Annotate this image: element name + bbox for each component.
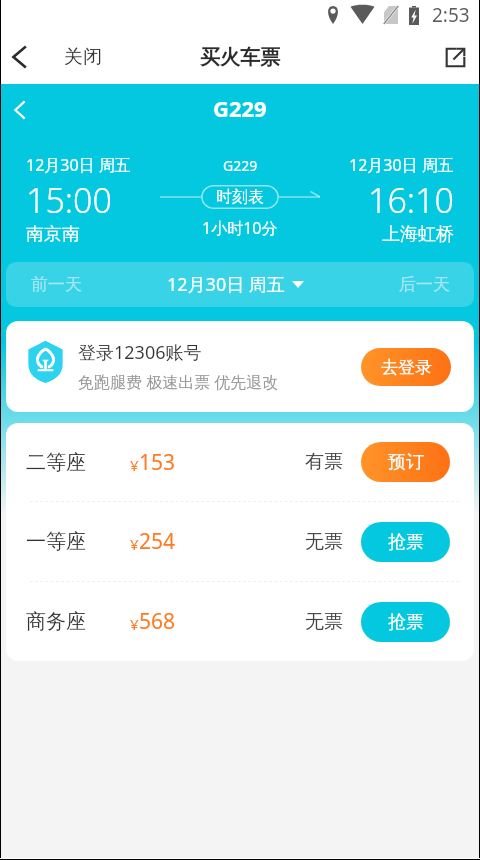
- staticText: ¥: [130, 455, 139, 475]
- staticText: 2:53: [432, 2, 470, 28]
- staticText: 无票: [305, 610, 343, 634]
- staticText: 登录12306账号: [78, 340, 202, 365]
- staticText: 有票: [305, 450, 343, 474]
- button[interactable]: 时刻表: [201, 185, 279, 209]
- button[interactable]: 预订: [361, 442, 450, 482]
- staticText: 568: [139, 607, 176, 636]
- staticText: 买火车票: [200, 45, 280, 70]
- button[interactable]: Back: [0, 84, 44, 136]
- staticText: 商务座: [26, 609, 86, 634]
- staticText: 12月30日 周五: [349, 154, 454, 176]
- button[interactable]: 抢票: [361, 522, 450, 562]
- staticText: 时刻表: [216, 187, 264, 207]
- button[interactable]: 登录12306账号: [6, 321, 474, 412]
- staticText: 预订: [388, 451, 424, 474]
- staticText: ¥: [130, 534, 139, 554]
- staticText: 15:00: [26, 177, 112, 223]
- button[interactable]: 前一天: [6, 262, 106, 307]
- staticText: 抢票: [388, 611, 424, 634]
- staticText: 二等座: [26, 450, 86, 475]
- button[interactable]: 关闭: [52, 30, 114, 84]
- staticText: 12月30日 周五: [167, 272, 285, 297]
- staticText: 免跑腿费 极速出票 优先退改: [78, 371, 279, 393]
- button[interactable]: 商务座: [6, 582, 474, 661]
- staticText: 关闭: [64, 45, 102, 69]
- button[interactable]: 12月30日 周五: [106, 262, 374, 307]
- staticText: 无票: [305, 530, 343, 554]
- button[interactable]: 一等座: [6, 502, 474, 581]
- staticText: 153: [139, 448, 176, 477]
- staticText: 抢票: [388, 531, 424, 554]
- staticText: 12月30日 周五: [26, 154, 131, 176]
- button[interactable]: Share: [432, 30, 480, 84]
- button[interactable]: 后一天: [374, 262, 474, 307]
- button[interactable]: 抢票: [361, 602, 450, 642]
- staticText: 南京南: [26, 223, 80, 246]
- staticText: 16:10: [368, 177, 454, 223]
- staticText: 去登录: [381, 357, 432, 378]
- staticText: G229: [223, 156, 258, 175]
- staticText: 一等座: [26, 529, 86, 554]
- staticText: ¥: [130, 614, 139, 634]
- staticText: 上海虹桥: [382, 223, 454, 246]
- staticText: 前一天: [31, 274, 82, 295]
- button[interactable]: Back: [0, 30, 44, 84]
- staticText: 后一天: [399, 274, 450, 295]
- button[interactable]: 去登录: [361, 348, 451, 386]
- button[interactable]: 二等座: [6, 423, 474, 501]
- staticText: 1小时10分: [202, 217, 278, 239]
- staticText: 254: [139, 527, 176, 556]
- staticText: G229: [213, 93, 267, 123]
